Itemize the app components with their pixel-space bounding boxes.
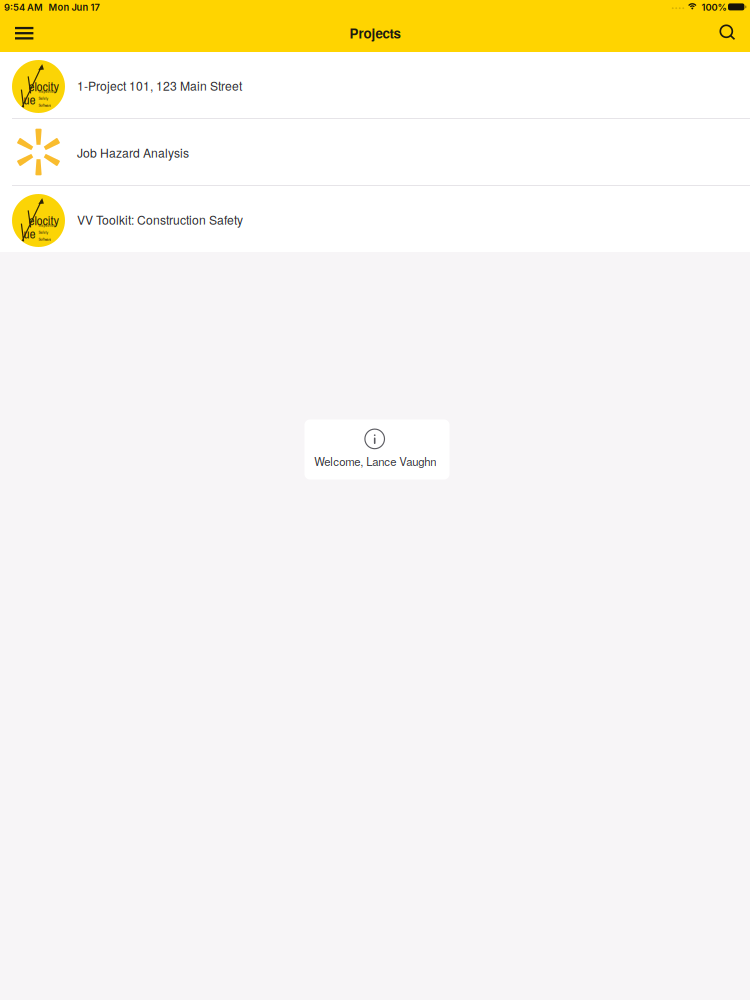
staticText: VV Toolkit: Construction Safety [77, 211, 243, 228]
staticText: Job Hazard Analysis [77, 144, 189, 161]
button[interactable]: Search [705, 15, 749, 49]
staticText: Software [38, 102, 51, 108]
staticText: Safety [38, 229, 48, 235]
staticText: Projects [349, 23, 400, 43]
staticText: Mon Jun 17 [48, 2, 99, 13]
staticText: 9:54 AM [4, 2, 43, 13]
staticText: Inspection [38, 88, 55, 94]
button[interactable]: elocity [0, 52, 750, 118]
staticText: Software [38, 236, 51, 242]
button[interactable]: Job Hazard Analysis [0, 119, 750, 185]
staticText: 100% [701, 2, 726, 13]
button[interactable]: elocity [0, 186, 750, 252]
staticText: Safety [38, 95, 48, 101]
staticText: ue [24, 91, 36, 109]
staticText: Welcome, Lance Vaughn [314, 453, 436, 469]
button[interactable]: Menu [0, 16, 48, 50]
staticText: 1-Project 101, 123 Main Street [77, 77, 242, 94]
staticText: Inspection [38, 222, 55, 228]
staticText: ue [24, 225, 36, 243]
staticText: elocity [28, 77, 58, 95]
staticText: elocity [28, 211, 58, 229]
